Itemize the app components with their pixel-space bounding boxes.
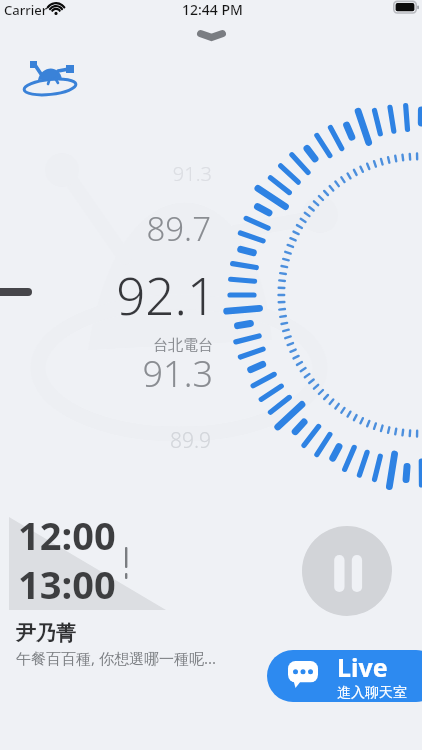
button[interactable]: Pause xyxy=(302,526,392,616)
staticText: 12:44 PM xyxy=(182,0,243,19)
staticText: 尹乃菁 xyxy=(16,621,76,646)
staticText: 12:00 xyxy=(18,509,116,561)
staticText: 91.3 xyxy=(142,349,213,398)
staticText: 91.3 xyxy=(172,160,212,187)
button[interactable]: Collapse xyxy=(191,15,231,55)
staticText: 92.1 xyxy=(116,260,216,329)
staticText: Carrier xyxy=(4,1,48,19)
staticText: 進入聊天室 xyxy=(337,684,407,702)
button[interactable]: Live xyxy=(267,650,422,702)
staticText: 89.7 xyxy=(146,206,211,251)
staticText: Live xyxy=(337,650,388,684)
staticText: 89.9 xyxy=(169,426,211,455)
staticText: 13:00 xyxy=(18,558,116,610)
button[interactable]: Station logo xyxy=(14,54,82,98)
staticText: 台北電台 xyxy=(153,336,213,355)
staticText: 午餐百百種, 你想選哪一種呢... xyxy=(16,648,216,668)
